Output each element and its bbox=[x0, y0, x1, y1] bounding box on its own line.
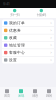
staticText: 我的 bbox=[46, 94, 52, 98]
button[interactable]: 付款码 bbox=[29, 8, 53, 17]
button[interactable]: 我的订单 bbox=[2, 19, 54, 26]
staticText: 客服中心 bbox=[9, 50, 25, 55]
button[interactable]: 首页 bbox=[0, 87, 14, 99]
button[interactable]: 发现 bbox=[14, 87, 28, 99]
button[interactable]: 我的 bbox=[42, 87, 56, 99]
staticText: 设置 bbox=[9, 58, 17, 62]
staticText: > bbox=[50, 36, 52, 40]
staticText: 首页 bbox=[4, 94, 10, 98]
staticText: 地址管理 bbox=[9, 43, 25, 47]
staticText: 付款码 bbox=[37, 13, 46, 17]
button[interactable]: 客服中心 bbox=[2, 49, 54, 56]
staticText: 扫一扫 bbox=[10, 13, 19, 17]
button[interactable]: 设置 bbox=[2, 56, 54, 63]
staticText: 收藏 bbox=[9, 35, 17, 40]
staticText: > bbox=[50, 28, 52, 32]
button[interactable]: 优惠券 bbox=[2, 27, 54, 34]
staticText: > bbox=[50, 43, 52, 47]
staticText: > bbox=[50, 58, 52, 62]
button[interactable]: 消息 bbox=[28, 87, 42, 99]
button[interactable]: 地址管理 bbox=[2, 42, 54, 49]
staticText: 9:41 bbox=[3, 2, 10, 6]
staticText: > bbox=[50, 21, 52, 25]
button[interactable]: 收藏 bbox=[2, 34, 54, 41]
staticText: 我的订单 bbox=[9, 21, 25, 25]
staticText: 发现 bbox=[18, 94, 24, 98]
staticText: 优惠券 bbox=[9, 28, 21, 33]
staticText: > bbox=[50, 51, 52, 55]
staticText: 消息 bbox=[32, 94, 38, 98]
button[interactable]: 扫一扫 bbox=[3, 8, 27, 17]
